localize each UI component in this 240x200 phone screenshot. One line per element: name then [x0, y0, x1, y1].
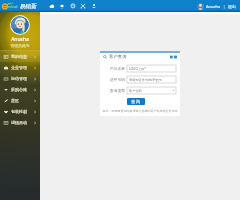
button[interactable]: Alerts [58, 2, 66, 10]
staticText: LOGO上的* [129, 67, 147, 71]
button[interactable]: 企业管理 [0, 62, 40, 73]
button[interactable]: Cloud [48, 2, 56, 10]
staticText: 货区 [11, 98, 19, 103]
staticText: 短信管理 [11, 76, 27, 81]
staticText: 管理员账号 [0, 43, 40, 48]
staticText: Anusha [206, 4, 221, 9]
staticText: 产品名称 [109, 66, 125, 71]
staticText: 采购台账 [11, 87, 27, 92]
button[interactable]: 包装耗材 [0, 106, 40, 117]
button[interactable]: 查 询 [127, 98, 145, 105]
button[interactable]: 我的信息 [0, 51, 40, 62]
button[interactable]: 请填写证件号码/护照号 [127, 76, 176, 83]
staticText: 易销新 [20, 3, 37, 10]
button[interactable]: Profile [90, 2, 98, 10]
staticText: 查询类型 [109, 88, 125, 93]
staticText: 企业管理 [11, 65, 27, 70]
button[interactable]: Tools [79, 2, 87, 10]
staticText: 请填写证件号码/护照号 [129, 78, 163, 82]
staticText: 进销品动 [11, 120, 27, 125]
staticText: 退出 [228, 4, 236, 9]
button[interactable]: 货区 [0, 95, 40, 106]
button[interactable]: Messages [69, 2, 77, 10]
staticText: 证件号码 [109, 77, 125, 82]
staticText: 客户查询 [109, 54, 127, 60]
button[interactable]: 采购台账 [0, 84, 40, 95]
staticText: 客户全部 [129, 89, 142, 93]
button[interactable]: Anusha [197, 3, 236, 10]
staticText: ecloud [8, 5, 18, 9]
button[interactable]: 进销品动 [0, 117, 40, 128]
staticText: 查 询 [131, 99, 141, 104]
button[interactable]: LOGO上的* [127, 65, 176, 72]
button[interactable]: 短信管理 [0, 73, 40, 84]
staticText: | [223, 4, 226, 9]
staticText: 我的信息 [11, 54, 27, 59]
button[interactable]: Profile photo [10, 15, 30, 35]
button[interactable]: 客户全部 [127, 87, 176, 94]
staticText: 包装耗材 [11, 109, 27, 114]
staticText: Anusha [0, 36, 40, 43]
staticText: 提示：如需要查询结果请输入准确的客户名称或证件号码 [100, 109, 180, 113]
